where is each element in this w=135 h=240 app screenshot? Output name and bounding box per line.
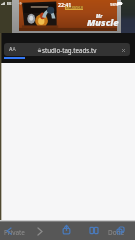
button[interactable]: Forward <box>35 226 45 236</box>
button[interactable]: Bookmarks <box>89 226 98 235</box>
staticText: 𝐀A <box>9 46 16 53</box>
button[interactable]: Stop loading <box>120 47 126 53</box>
button[interactable]: LEARN MORE <box>65 6 83 10</box>
staticText: studio-tag.teads.tv <box>42 46 97 54</box>
button[interactable]: Back <box>4 226 14 236</box>
staticText: EE <box>7 1 12 6</box>
staticText: Private <box>4 228 25 237</box>
staticText: Done <box>108 228 125 237</box>
staticText: Mr <box>96 13 103 19</box>
staticText: 22:41 <box>58 1 72 8</box>
button[interactable]: Tabs <box>116 226 125 235</box>
staticText: LEARN MORE <box>66 6 83 10</box>
button[interactable]: Share <box>62 225 71 234</box>
staticText: 98% <box>110 2 119 8</box>
button[interactable]: 𝐀A <box>4 43 130 56</box>
staticText: Muscle <box>87 16 119 29</box>
